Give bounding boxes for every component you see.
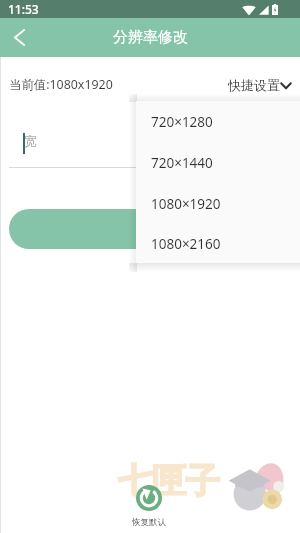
button[interactable]: 720×1440 — [136, 142, 300, 183]
staticText: 恢复默认 — [132, 517, 166, 528]
button[interactable]: 1080×2160 — [136, 224, 300, 263]
staticText: 720×1280 — [151, 113, 213, 131]
staticText: 1080×2160 — [151, 235, 221, 253]
staticText: 当前值:1080x1920 — [9, 76, 113, 93]
staticText: 720×1440 — [151, 154, 213, 172]
staticText: 宽 — [24, 133, 37, 149]
staticText: 1080×1920 — [151, 195, 221, 213]
button[interactable]: 1080×1920 — [136, 183, 300, 224]
staticText: 七匣子 — [118, 459, 219, 503]
button[interactable]: 恢复默认 — [124, 485, 174, 528]
button[interactable]: Back — [0, 18, 38, 57]
button[interactable]: 快捷设置 — [228, 77, 292, 93]
button[interactable]: 720×1280 — [136, 101, 300, 142]
staticText: 11:53 — [8, 1, 39, 17]
staticText: 快捷设置 — [228, 77, 280, 93]
button[interactable] — [9, 209, 291, 249]
staticText: 分辨率修改 — [113, 28, 188, 47]
